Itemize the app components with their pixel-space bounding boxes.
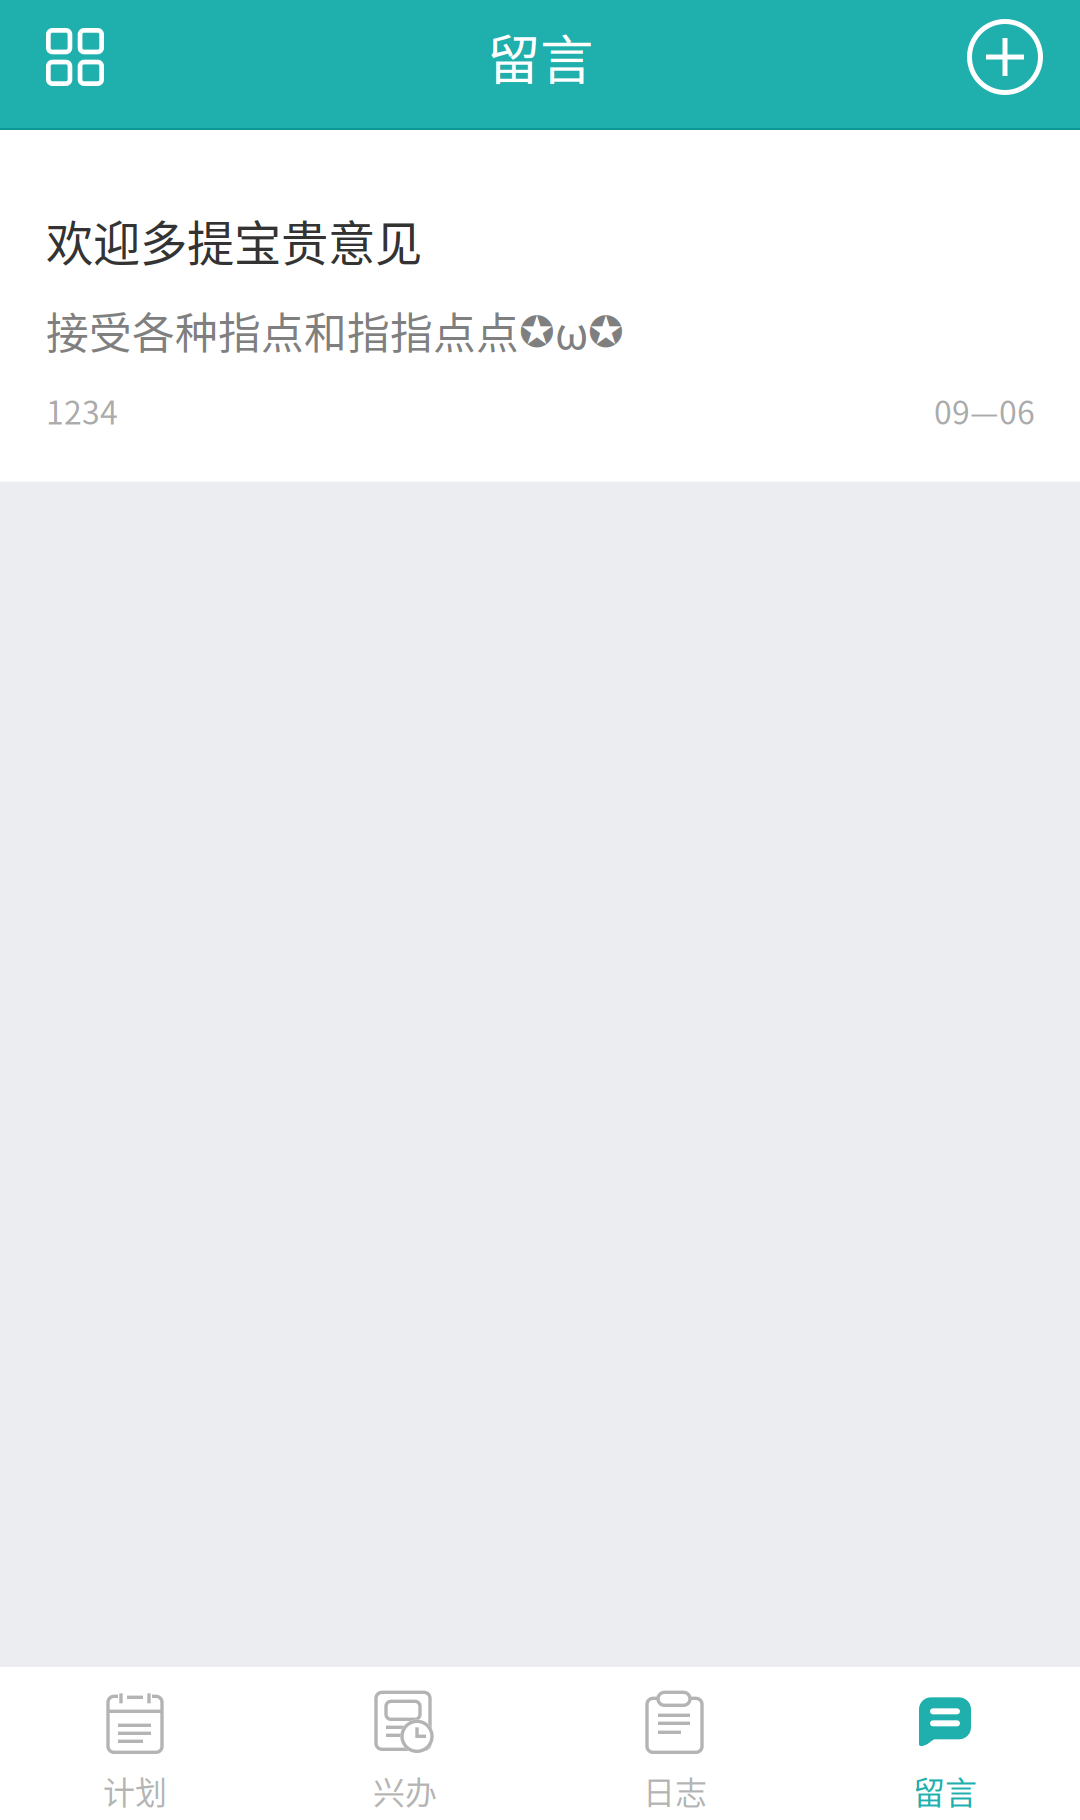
staticText: 日志 xyxy=(643,1767,707,1814)
staticText: 计划 xyxy=(103,1767,167,1814)
button[interactable]: 日志 xyxy=(540,1662,810,1820)
staticText: 接受各种指点和指指点点✪ω✪ xyxy=(46,299,624,361)
button[interactable]: 留言 xyxy=(810,1662,1080,1820)
button[interactable]: 兴办 xyxy=(270,1662,540,1820)
button[interactable]: Menu xyxy=(0,0,134,128)
staticText: 留言 xyxy=(487,18,593,95)
button[interactable]: 计划 xyxy=(0,1662,270,1820)
staticText: 09—06 xyxy=(934,387,1035,434)
staticText: 留言 xyxy=(913,1767,977,1814)
staticText: 欢迎多提宝贵意见 xyxy=(46,206,422,274)
button[interactable]: Add xyxy=(937,0,1080,128)
button[interactable]: 欢迎多提宝贵意见 xyxy=(0,130,1080,482)
staticText: 兴办 xyxy=(373,1767,437,1814)
staticText: 1234 xyxy=(46,387,118,434)
